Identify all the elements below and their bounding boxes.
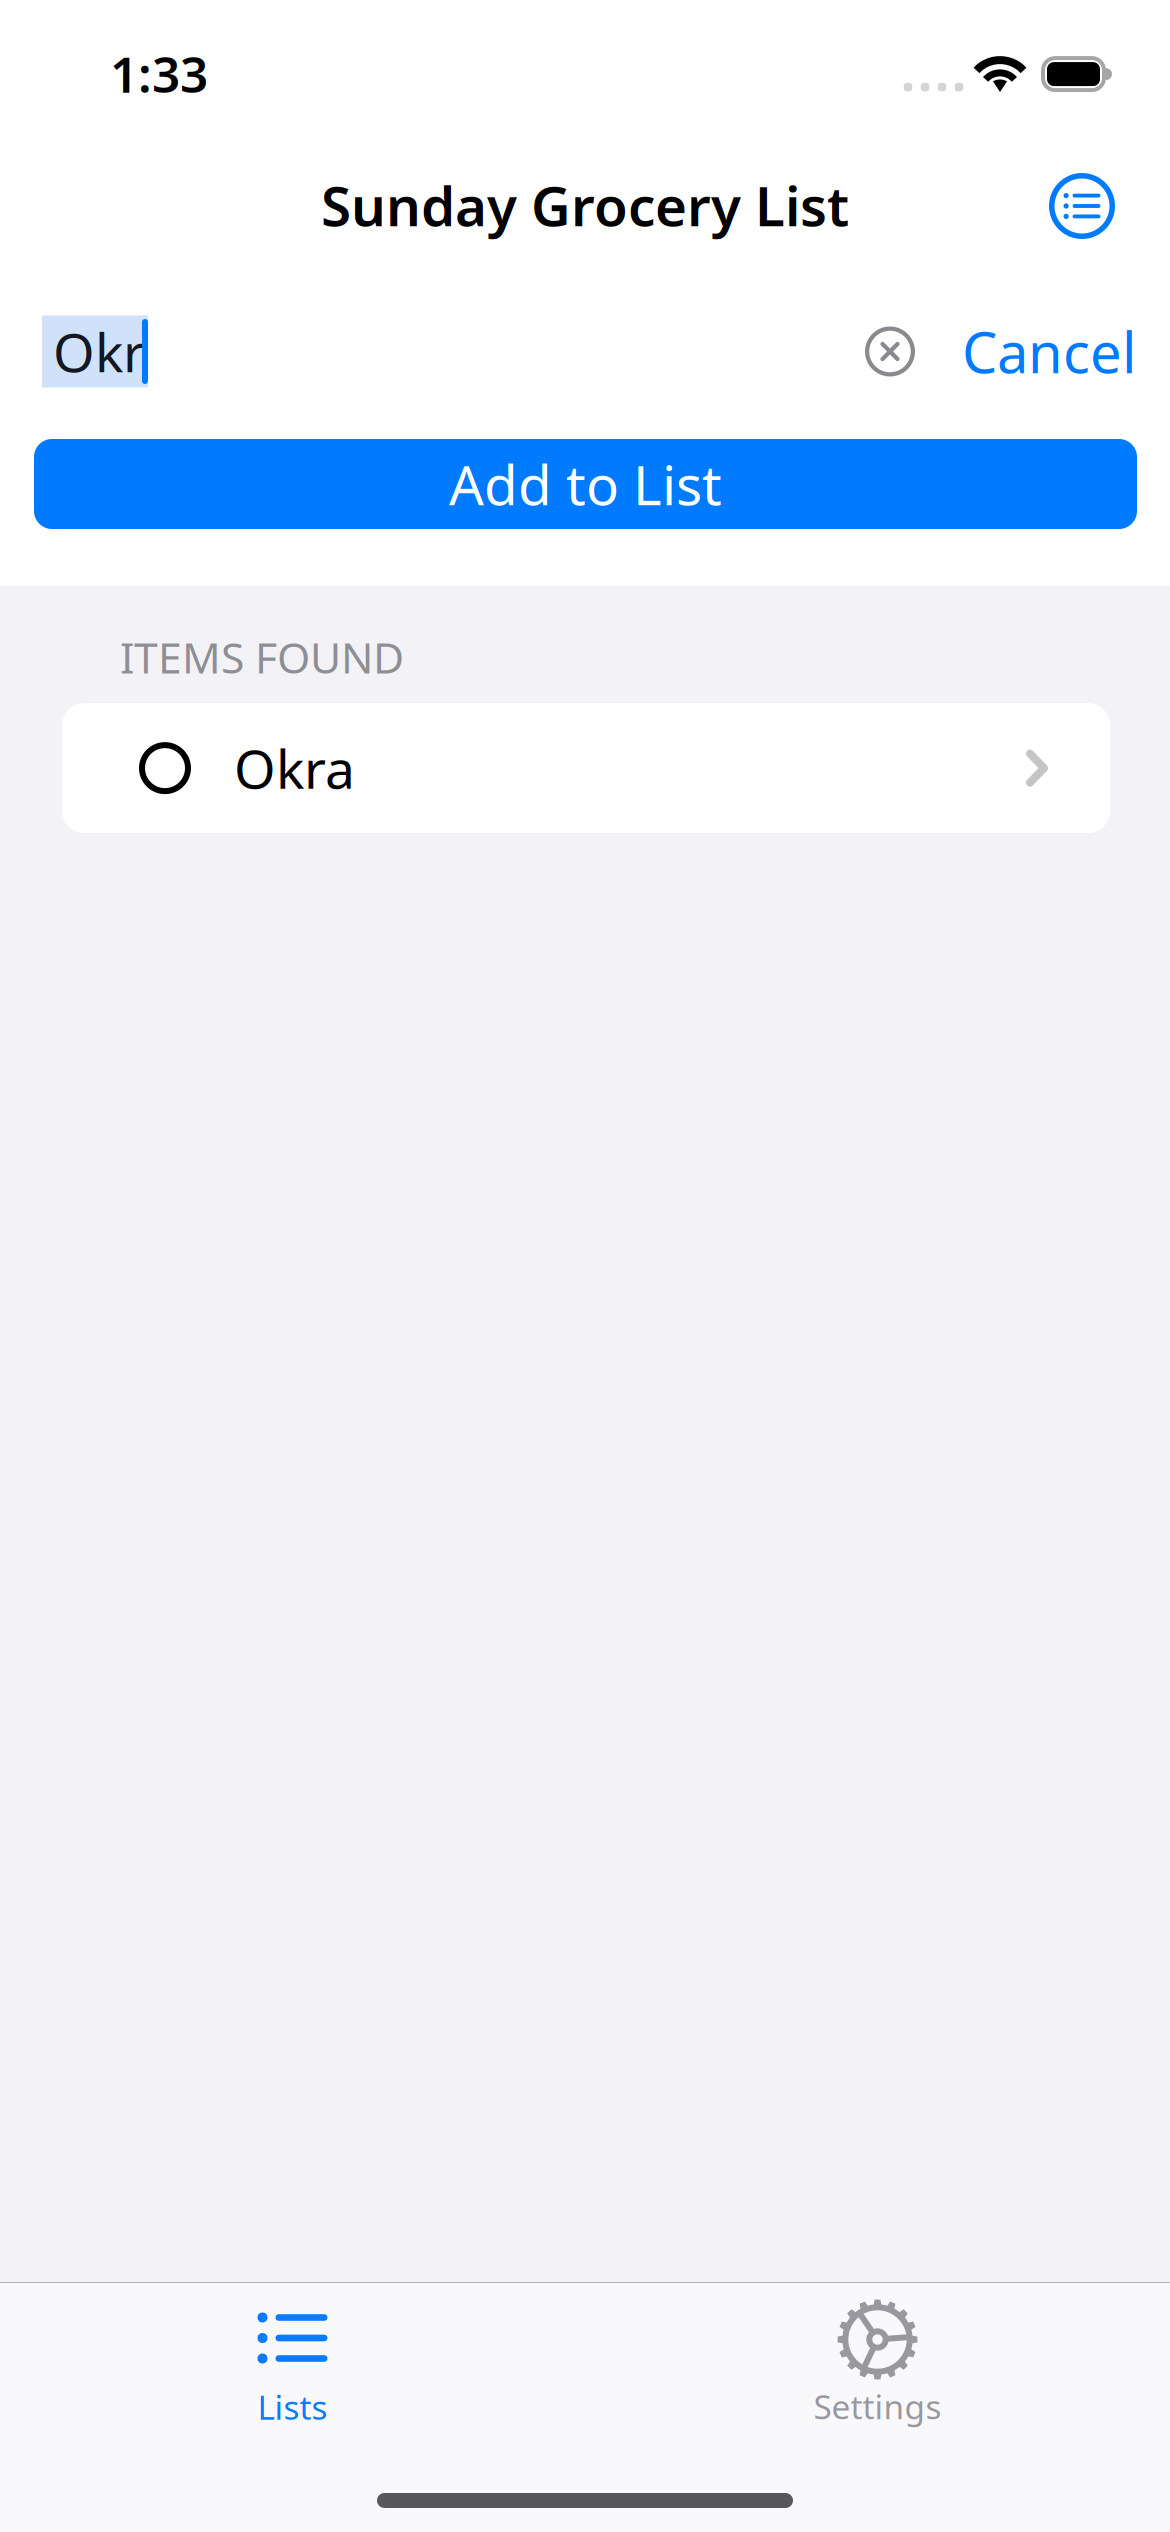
- staticText: 1:33: [110, 40, 208, 107]
- staticText: Add to List: [449, 447, 722, 521]
- button[interactable]: Clear text: [865, 314, 915, 388]
- button[interactable]: Okra: [62, 703, 1110, 833]
- button[interactable]: Cancel: [962, 314, 1136, 388]
- staticText: Settings: [813, 2383, 941, 2429]
- staticText: Okra: [234, 732, 355, 804]
- staticText: Cancel: [962, 313, 1136, 390]
- button[interactable]: Settings: [585, 2283, 1170, 2429]
- button[interactable]: Lists: [0, 2283, 585, 2429]
- staticText: ITEMS FOUND: [120, 628, 404, 686]
- staticText: Lists: [257, 2384, 327, 2429]
- staticText: Sunday Grocery List: [321, 168, 849, 242]
- button[interactable]: Add to List: [34, 439, 1137, 529]
- staticText: Okr: [53, 315, 145, 388]
- button[interactable]: List options: [1049, 115, 1115, 239]
